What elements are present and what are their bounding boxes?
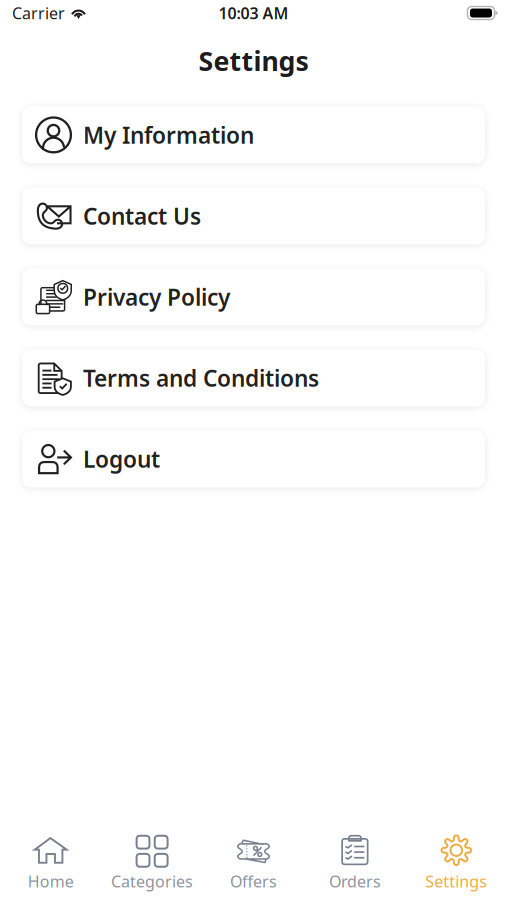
button[interactable]: Privacy Policy — [22, 268, 485, 325]
button[interactable]: My Information — [22, 106, 485, 163]
staticText: Logout — [83, 444, 160, 474]
staticText: Contact Us — [83, 201, 201, 231]
staticText: Privacy Policy — [83, 282, 230, 312]
button[interactable]: Offers — [203, 835, 304, 892]
button[interactable]: Settings — [406, 835, 507, 892]
button[interactable]: Terms and Conditions — [22, 349, 485, 406]
button[interactable]: Orders — [304, 835, 406, 892]
button[interactable]: Logout — [22, 430, 485, 487]
staticText: Settings — [198, 43, 308, 78]
button[interactable]: Categories — [101, 835, 203, 892]
staticText: Home — [28, 871, 74, 892]
button[interactable]: Contact Us — [22, 187, 485, 244]
staticText: Orders — [329, 871, 381, 892]
staticText: My Information — [83, 120, 254, 150]
staticText: Offers — [230, 871, 277, 892]
button[interactable]: Home — [0, 835, 101, 892]
staticText: Categories — [111, 871, 193, 892]
staticText: Settings — [425, 871, 487, 892]
staticText: Terms and Conditions — [83, 363, 319, 393]
staticText: 10:03 AM — [218, 2, 288, 24]
staticText: Carrier — [12, 2, 65, 24]
